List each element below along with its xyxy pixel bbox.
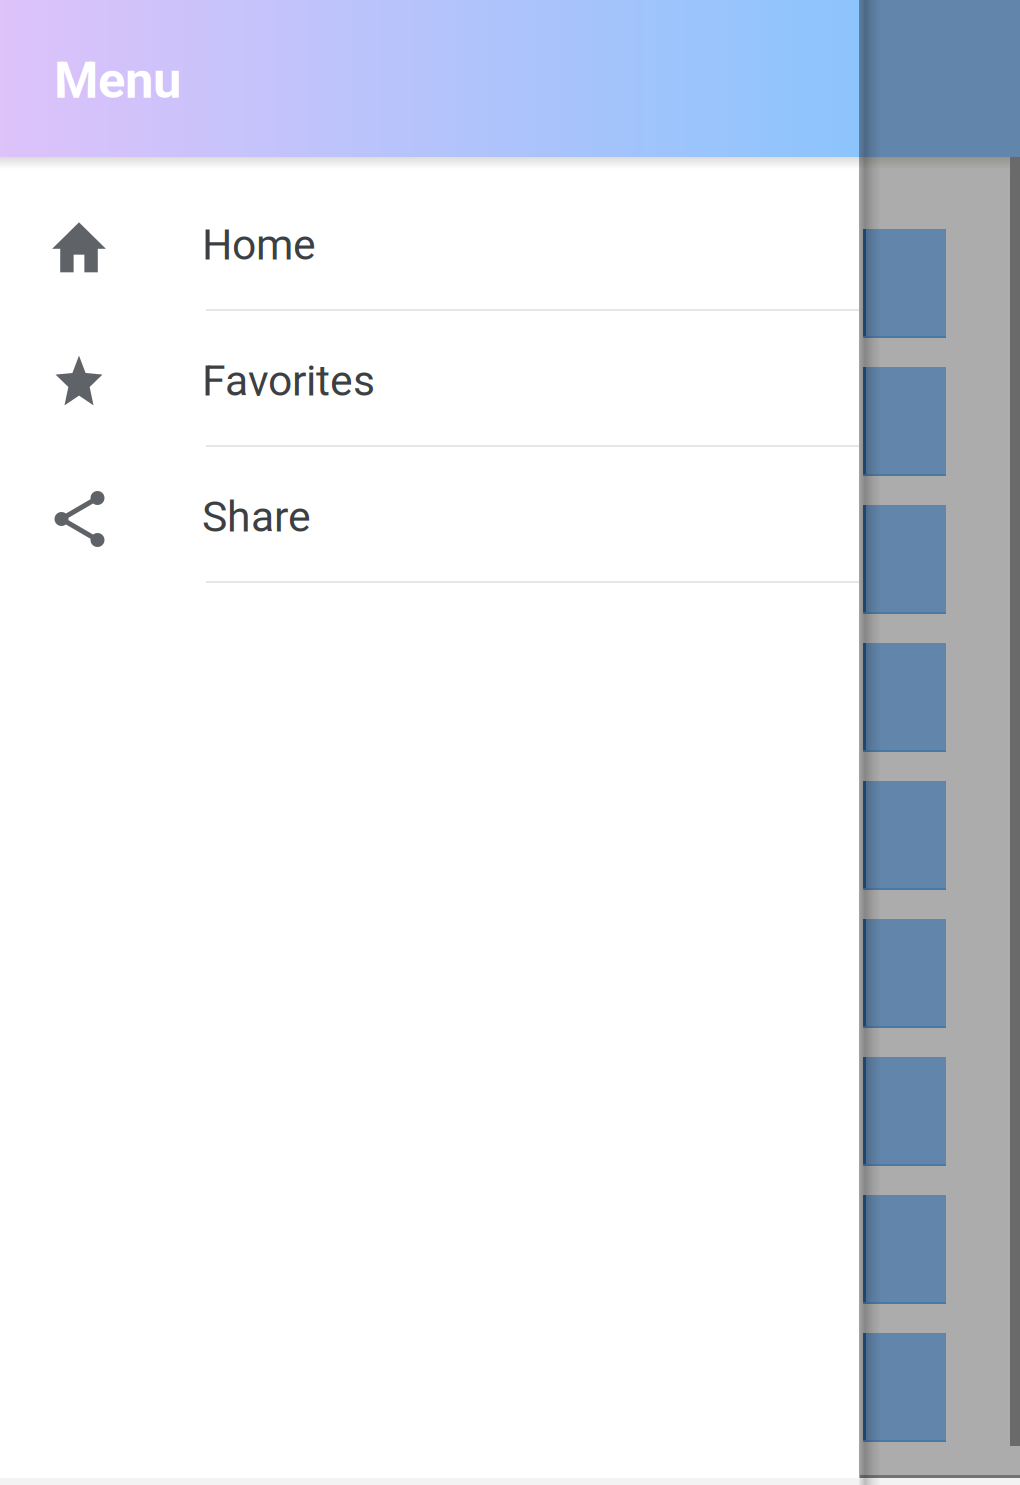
button[interactable]: Home (0, 175, 859, 311)
button[interactable]: Favorites (0, 311, 859, 447)
button[interactable]: Share (0, 447, 859, 583)
staticText: Share (202, 492, 311, 542)
staticText: Favorites (202, 356, 375, 406)
staticText: Menu (54, 51, 181, 110)
staticText: Home (202, 220, 316, 270)
